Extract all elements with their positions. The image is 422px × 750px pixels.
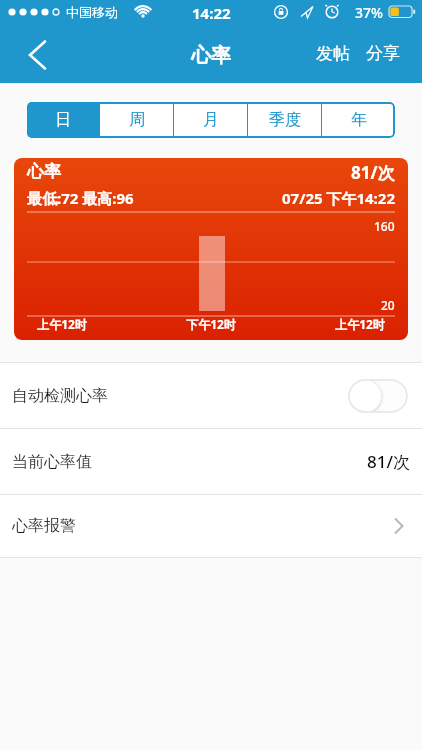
button[interactable]: 发帖 (316, 43, 350, 64)
staticText: 当前心率值 (12, 452, 367, 472)
button[interactable] (348, 379, 408, 413)
button[interactable]: 日 (27, 102, 99, 138)
staticText: 周 (129, 110, 145, 130)
staticText: 上午12时 (22, 316, 102, 332)
staticText: 81/次 (367, 450, 410, 473)
button[interactable]: 周 (100, 102, 173, 138)
button[interactable]: 当前心率值 (0, 429, 422, 494)
staticText: 14:22 (192, 3, 231, 23)
staticText: 日 (55, 110, 71, 130)
button[interactable]: 分享 (366, 43, 400, 64)
staticText: 07/25 下午14:22 (282, 188, 395, 208)
button[interactable]: 年 (322, 102, 395, 138)
button[interactable]: 季度 (248, 102, 321, 138)
staticText: 季度 (269, 110, 301, 130)
button[interactable]: 月 (174, 102, 247, 138)
staticText: 月 (203, 110, 219, 130)
staticText: 心率 (191, 43, 231, 68)
button[interactable] (10, 23, 54, 77)
staticText: 心率报警 (12, 516, 394, 536)
staticText: 心率 (27, 161, 61, 182)
staticText: 中国移动 (66, 4, 118, 20)
staticText: 最低:72 最高:96 (27, 188, 134, 208)
staticText: 160 (374, 218, 395, 234)
staticText: 上午12时 (320, 316, 400, 332)
staticText: 下午12时 (171, 316, 251, 332)
staticText: 37% (355, 3, 383, 22)
staticText: 81/次 (351, 161, 395, 184)
staticText: 自动检测心率 (12, 386, 348, 406)
button[interactable]: 自动检测心率 (0, 363, 422, 428)
button[interactable]: 心率报警 (0, 495, 422, 557)
staticText: 20 (381, 297, 395, 313)
staticText: 年 (351, 110, 367, 130)
